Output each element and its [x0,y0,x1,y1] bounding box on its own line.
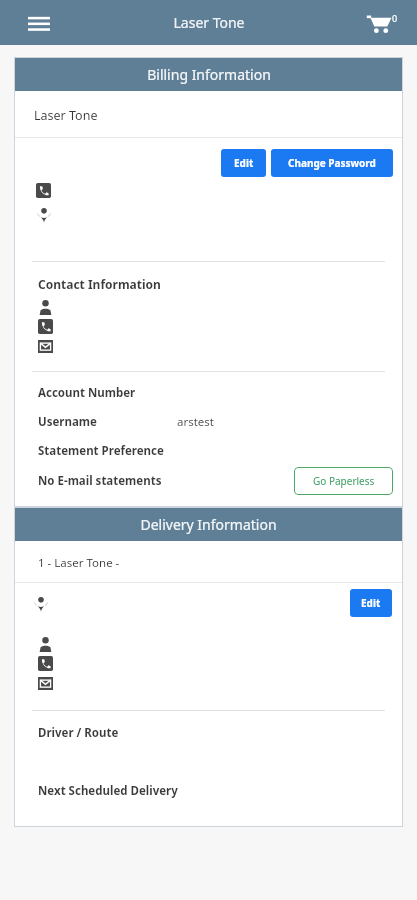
button[interactable]: Cart [363,4,401,42]
staticText: Next Scheduled Delivery [38,783,178,799]
staticText: Laser Tone [173,13,245,32]
staticText: Edit [234,156,254,170]
button[interactable]: Edit [221,149,266,177]
staticText: Go Paperless [313,474,375,488]
button[interactable]: Change Password [271,149,393,177]
staticText: Delivery Information [140,515,277,534]
staticText: Edit [361,596,381,610]
staticText: arstest [177,414,215,430]
staticText: Account Number [38,385,136,401]
staticText: 1 - Laser Tone - [38,555,120,571]
staticText: Laser Tone [34,107,98,124]
staticText: Change Password [288,156,376,170]
staticText: Username [38,414,97,430]
staticText: No E-mail statements [38,473,162,489]
staticText: Contact Information [38,276,161,292]
staticText: 0 [392,12,398,24]
staticText: Driver / Route [38,725,119,741]
button[interactable]: Edit [350,589,392,617]
staticText: Statement Preference [38,443,164,459]
button[interactable]: Go Paperless [294,467,393,495]
button[interactable]: Menu [22,6,56,40]
staticText: Billing Information [147,65,271,84]
